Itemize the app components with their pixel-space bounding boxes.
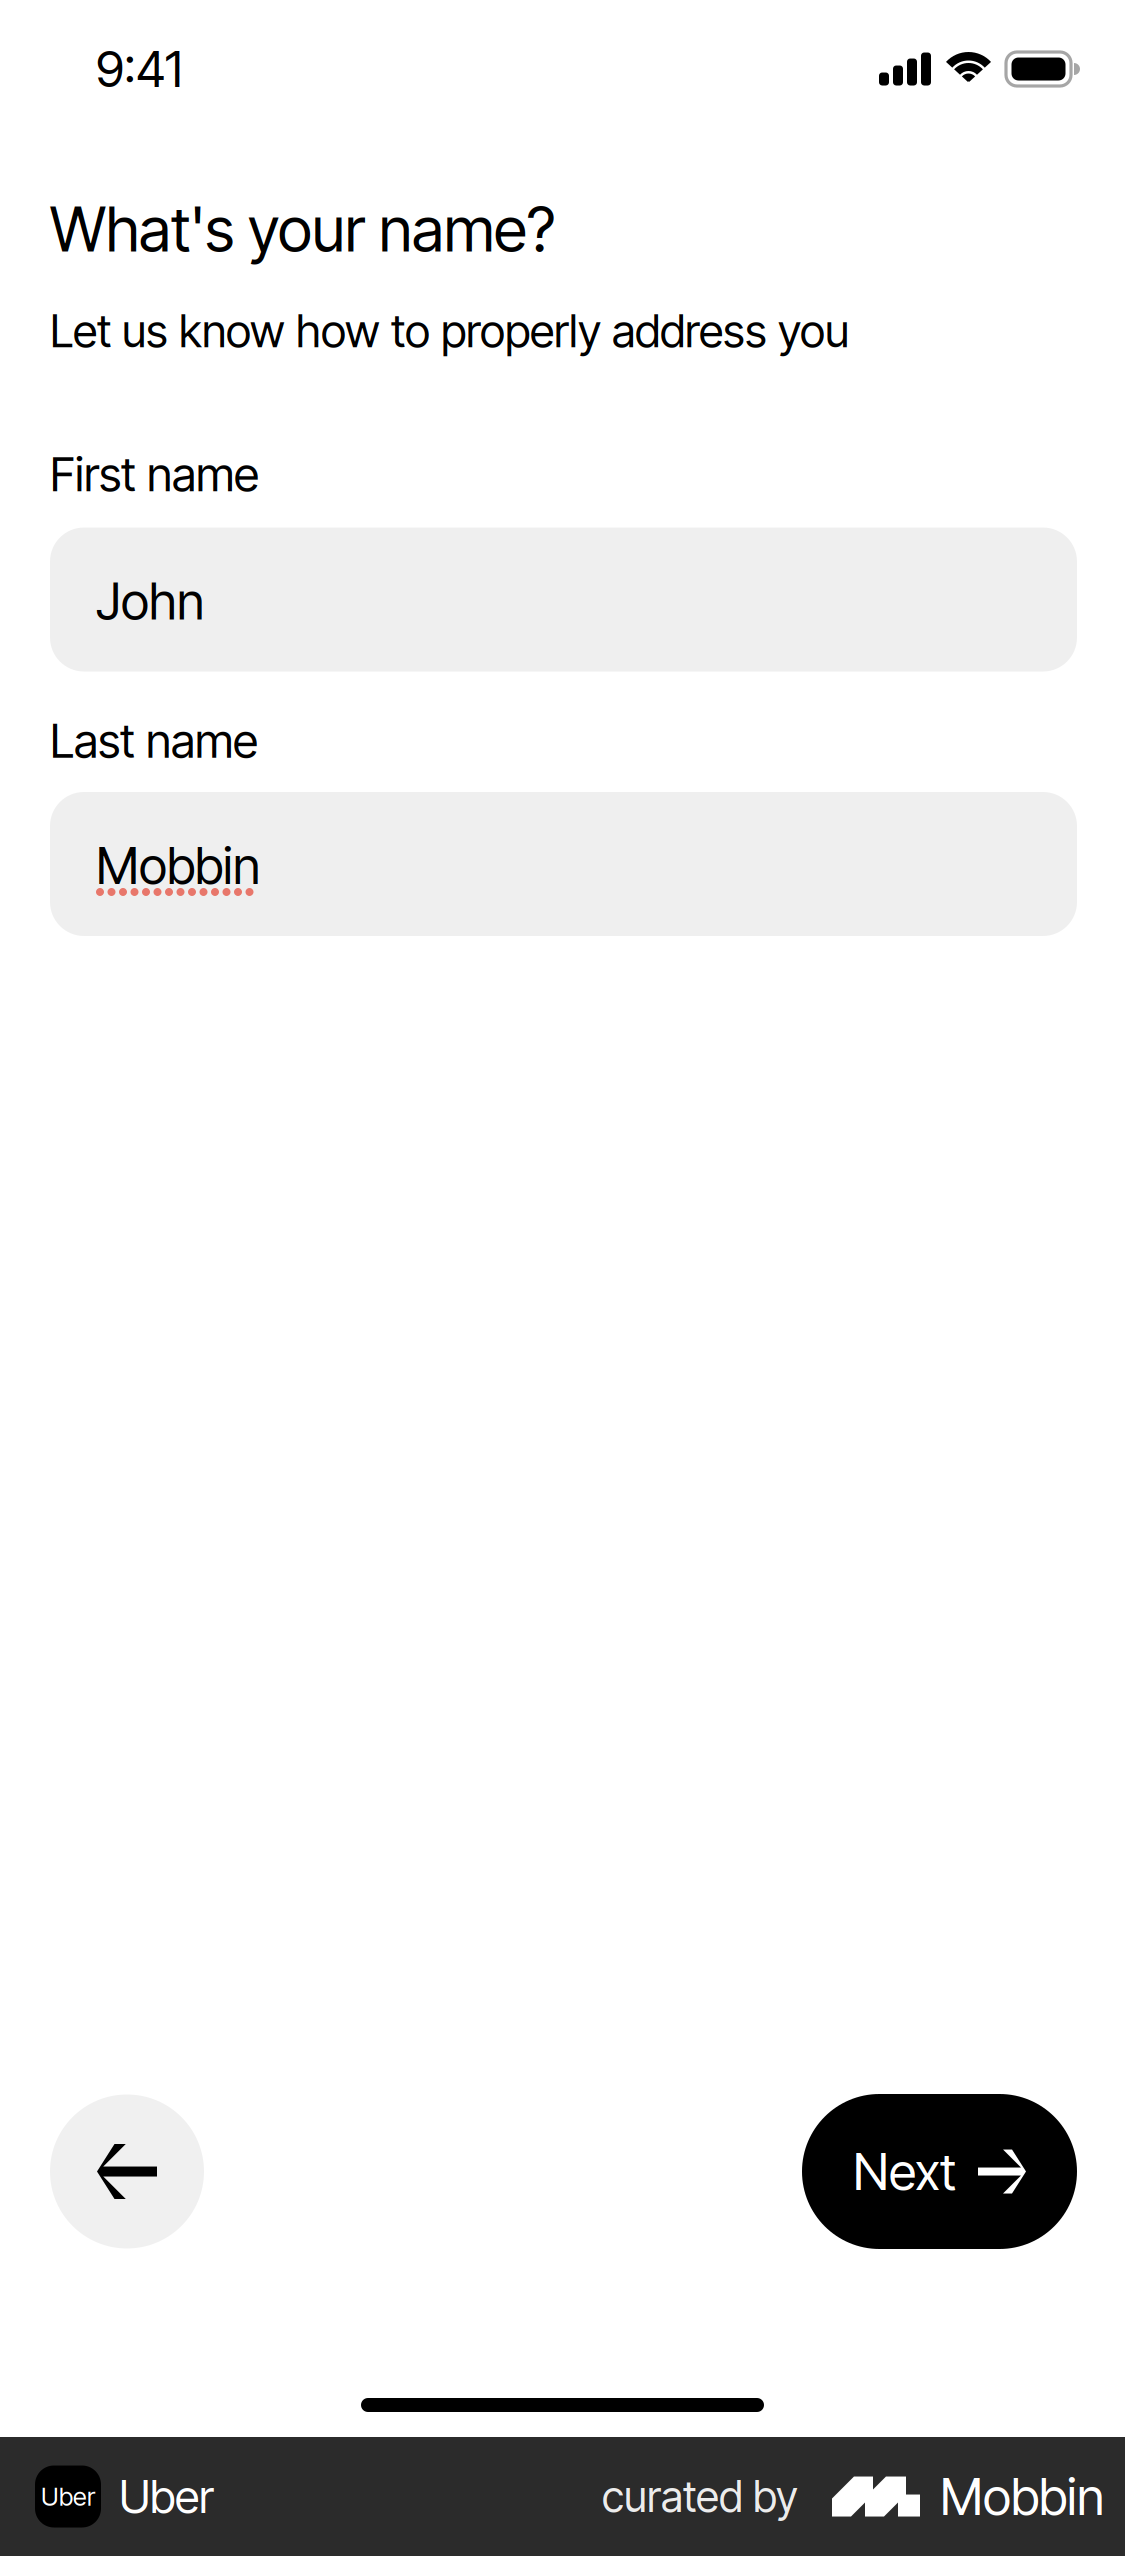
staticText: John: [96, 570, 204, 632]
staticText: curated by: [602, 2471, 798, 2522]
staticText: Uber: [119, 2469, 214, 2524]
staticText: What's your name?: [50, 192, 555, 266]
button[interactable]: Back: [50, 2094, 204, 2248]
staticText: Next: [853, 2141, 956, 2202]
button[interactable]: Mobbin: [50, 792, 1077, 936]
staticText: First name: [50, 446, 259, 503]
staticText: Last name: [50, 712, 258, 769]
staticText: Mobbin: [96, 835, 260, 896]
staticText: Mobbin: [940, 2466, 1104, 2527]
staticText: Let us know how to properly address you: [50, 303, 849, 358]
staticText: 9:41: [96, 39, 183, 99]
button[interactable]: John: [50, 527, 1077, 671]
staticText: Uber: [41, 2481, 95, 2512]
button[interactable]: Next: [802, 2094, 1077, 2249]
